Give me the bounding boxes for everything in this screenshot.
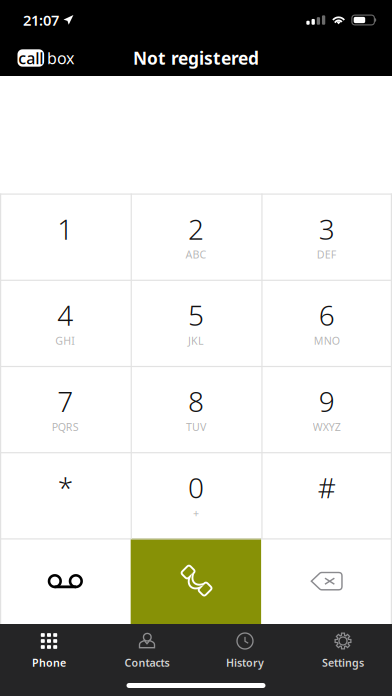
staticText: 8 [188,383,204,420]
button[interactable]: 5 [131,280,261,366]
staticText: Phone [32,655,66,670]
staticText: PQRS [52,420,79,434]
button[interactable]: Phone [0,624,98,671]
staticText: GHI [55,334,75,348]
staticText: Contacts [124,655,169,670]
staticText: + [193,506,199,520]
staticText: ABC [185,247,206,262]
staticText: DEF [317,247,337,262]
staticText: 5 [188,296,204,334]
button[interactable]: 6 [261,280,392,366]
button[interactable]: 3 [261,193,392,280]
button[interactable]: 9 [261,366,392,452]
button[interactable]: # [261,452,392,538]
button[interactable]: 8 [131,366,261,452]
staticText: * [58,469,73,506]
staticText: box [47,47,74,69]
staticText: 2 [188,210,204,247]
staticText: MNO [314,334,340,348]
button[interactable]: Voicemail [0,538,131,624]
staticText: 3 [319,210,335,247]
button[interactable]: call [17,47,74,69]
staticText: 4 [57,296,73,334]
button[interactable]: 2 [131,193,261,280]
button[interactable]: 0 [131,452,261,538]
staticText: 0 [188,469,204,506]
staticText: Settings [322,655,364,670]
button[interactable]: 4 [0,280,131,366]
staticText: # [318,469,336,506]
staticText: History [226,655,264,670]
staticText: 9 [319,383,335,420]
staticText: JKL [188,334,204,348]
staticText: 7 [57,383,73,420]
staticText: 6 [319,296,335,334]
staticText: Not registered [133,46,259,69]
staticText: WXYZ [313,420,341,434]
button[interactable]: * [0,452,131,538]
button[interactable]: 1 [0,193,131,280]
staticText: TUV [186,420,206,434]
button[interactable]: Settings [294,624,392,671]
staticText: 21:07 [23,10,59,30]
button[interactable]: 7 [0,366,131,452]
button[interactable]: Contacts [98,624,196,671]
staticText: 1 [57,210,73,247]
staticText: call [18,47,43,69]
button[interactable]: Call [131,538,261,624]
button[interactable]: History [196,624,294,671]
button[interactable]: Delete [261,538,392,624]
